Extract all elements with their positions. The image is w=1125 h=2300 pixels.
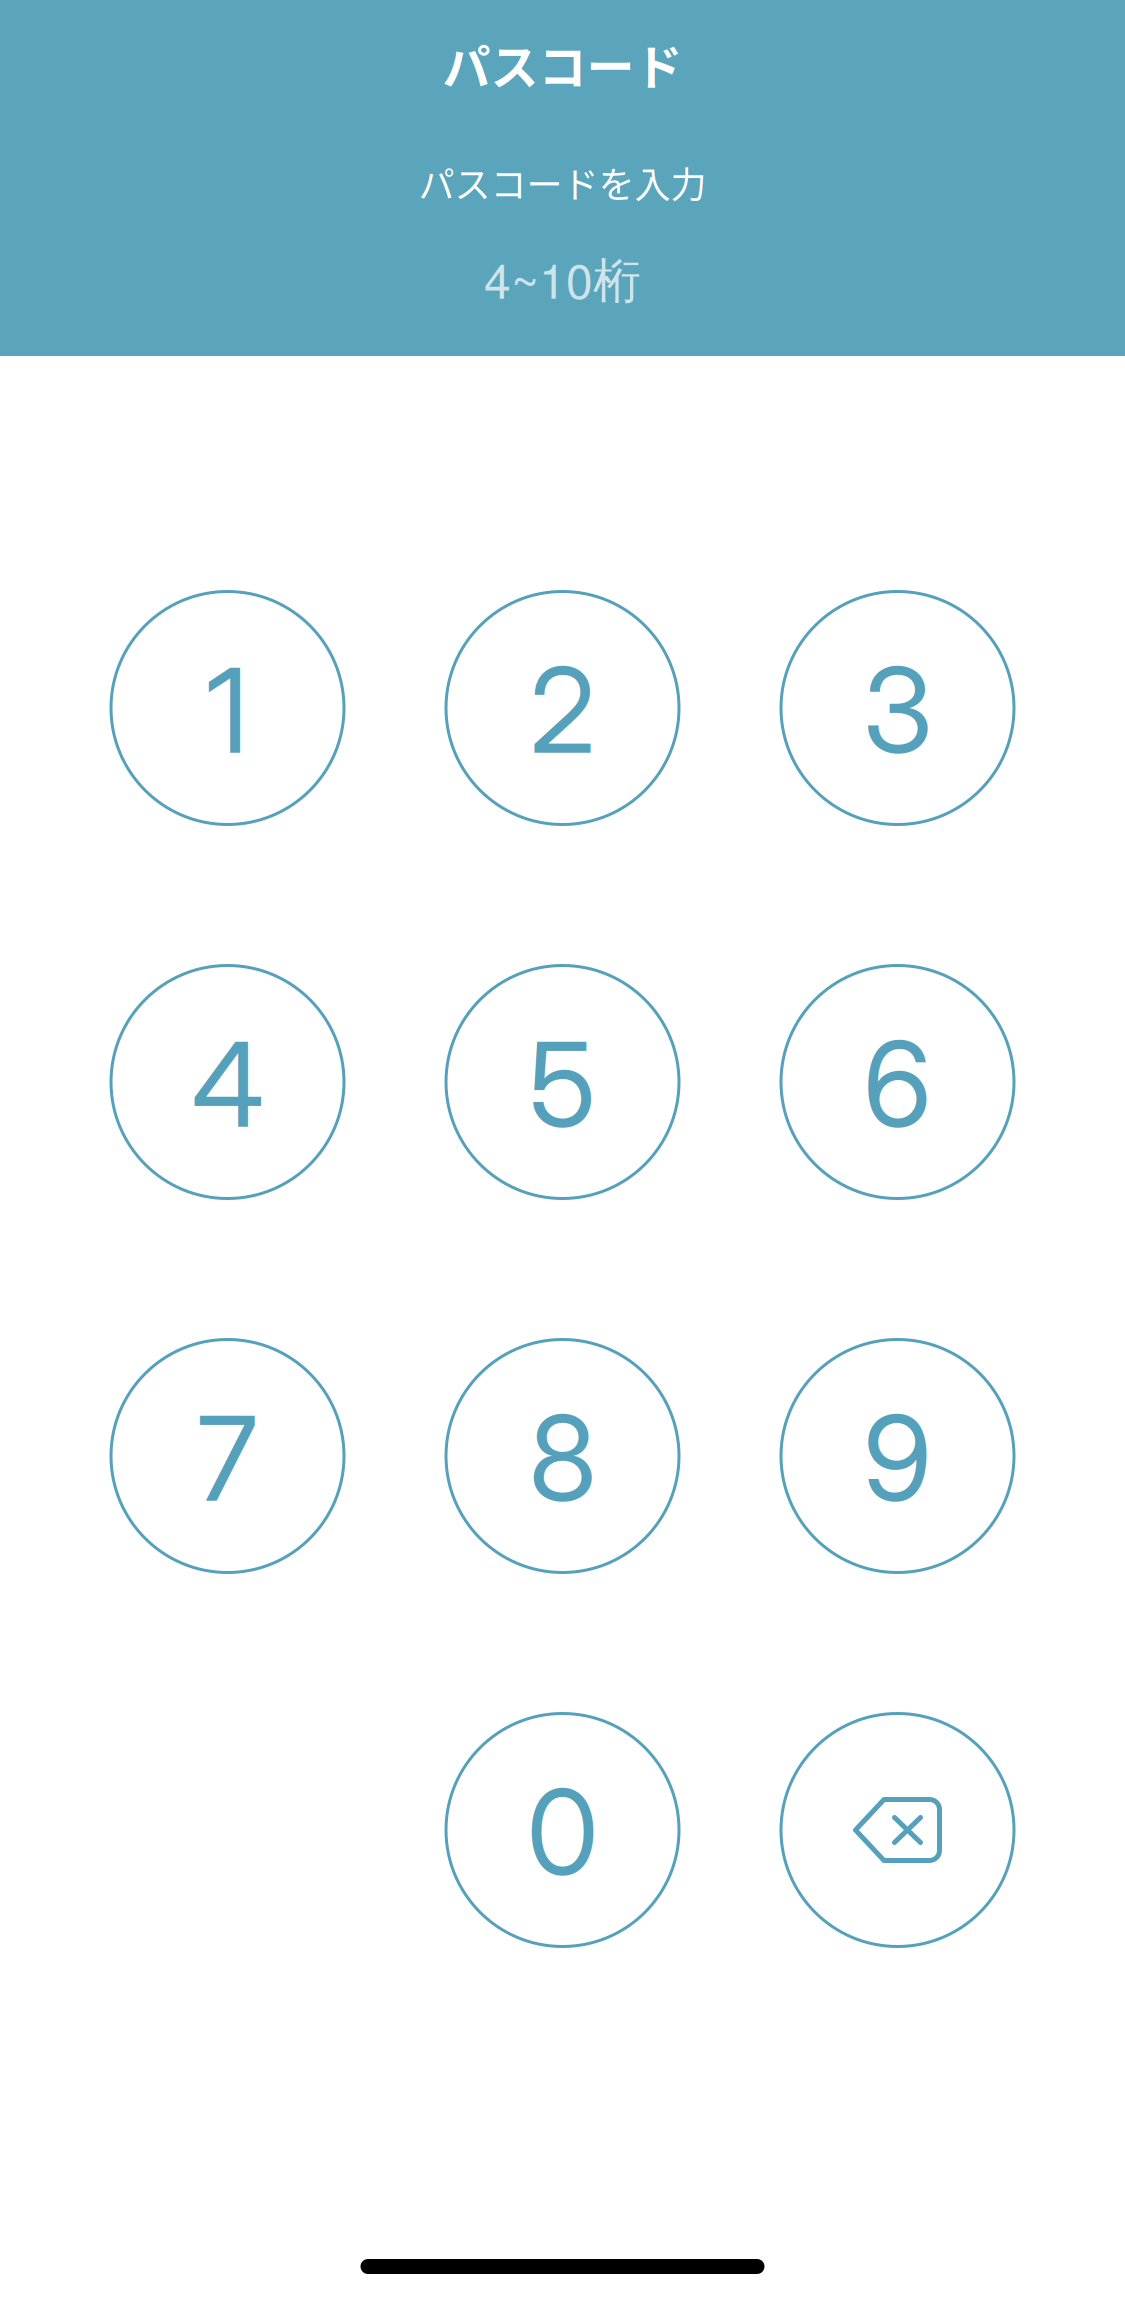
staticText: 8 <box>528 1387 596 1529</box>
staticText: 1 <box>206 639 249 781</box>
staticText: 6 <box>863 1013 932 1155</box>
staticText: 0 <box>526 1761 598 1903</box>
staticText: パスコード <box>442 29 682 98</box>
button[interactable]: 9 <box>779 1338 1015 1574</box>
button[interactable]: 0 <box>444 1712 680 1948</box>
button[interactable]: 7 <box>109 1338 345 1574</box>
button[interactable]: 2 <box>444 590 680 826</box>
staticText: 5 <box>528 1013 596 1155</box>
staticText: 4 <box>191 1013 263 1155</box>
staticText: 9 <box>863 1387 932 1529</box>
button[interactable]: 8 <box>444 1338 680 1574</box>
staticText: 7 <box>197 1387 258 1529</box>
button[interactable]: 6 <box>779 964 1015 1200</box>
button[interactable]: 1 <box>109 590 345 826</box>
button[interactable]: Delete <box>779 1712 1015 1948</box>
button[interactable]: 4 <box>109 964 345 1200</box>
staticText: 2 <box>529 639 595 781</box>
button[interactable]: 5 <box>444 964 680 1200</box>
staticText: 3 <box>862 639 932 781</box>
staticText: パスコードを入力 <box>418 156 706 209</box>
staticText: 4~10桁 <box>484 244 641 312</box>
button[interactable]: 3 <box>779 590 1015 826</box>
